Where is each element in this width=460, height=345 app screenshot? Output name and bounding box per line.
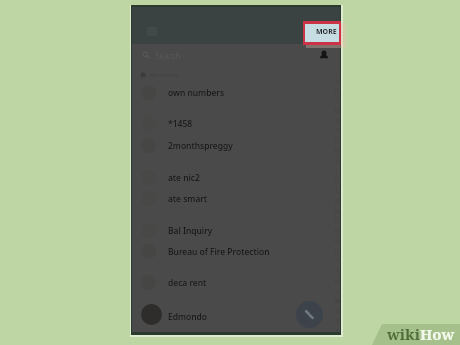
button[interactable]: Account (317, 48, 331, 62)
button[interactable]: New call (296, 301, 323, 328)
button[interactable]: 2monthspreggy (132, 135, 340, 156)
staticText: MORE (316, 27, 337, 37)
staticText: own numbers (168, 87, 225, 99)
staticText: Bal Inquiry (168, 225, 213, 237)
button[interactable]: MORE (303, 21, 341, 45)
staticText: Bureau of Fire Protection (168, 246, 270, 258)
staticText: How (420, 324, 455, 340)
button[interactable]: Bal Inquiry (132, 220, 340, 241)
staticText: deca rent (168, 277, 207, 289)
button[interactable]: Edmondo (132, 306, 340, 327)
staticText: 2monthspreggy (168, 140, 233, 152)
button[interactable]: ate nic2 (132, 167, 340, 188)
button[interactable]: ate smart (132, 188, 340, 209)
staticText: wiki (387, 324, 420, 340)
button[interactable]: deca rent (132, 272, 340, 293)
staticText: ate nic2 (168, 172, 200, 184)
button[interactable]: own numbers (132, 82, 340, 103)
staticText: Edmondo (168, 311, 208, 323)
button[interactable]: Bureau of Fire Protection (132, 241, 340, 262)
button[interactable]: *1458 (132, 113, 340, 134)
staticText: *1458 (168, 118, 193, 130)
staticText: ate smart (168, 193, 208, 205)
staticText: Search (155, 50, 181, 61)
staticText: Z (336, 328, 339, 335)
